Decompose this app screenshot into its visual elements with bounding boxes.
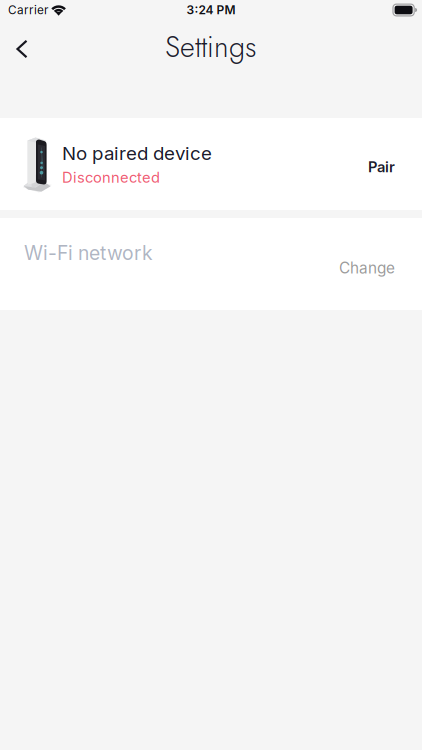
staticText: Disconnected (62, 168, 160, 186)
button[interactable]: Back (5, 29, 39, 69)
button[interactable]: Change (326, 247, 408, 289)
staticText: Wi-Fi network (24, 241, 153, 265)
staticText: Change (339, 259, 395, 277)
staticText: No paired device (62, 142, 212, 164)
staticText: Pair (368, 158, 395, 176)
button[interactable]: Pair (353, 145, 410, 189)
staticText: Carrier (8, 3, 48, 17)
staticText: Settings (165, 26, 257, 68)
staticText: 3:24 PM (186, 3, 235, 17)
